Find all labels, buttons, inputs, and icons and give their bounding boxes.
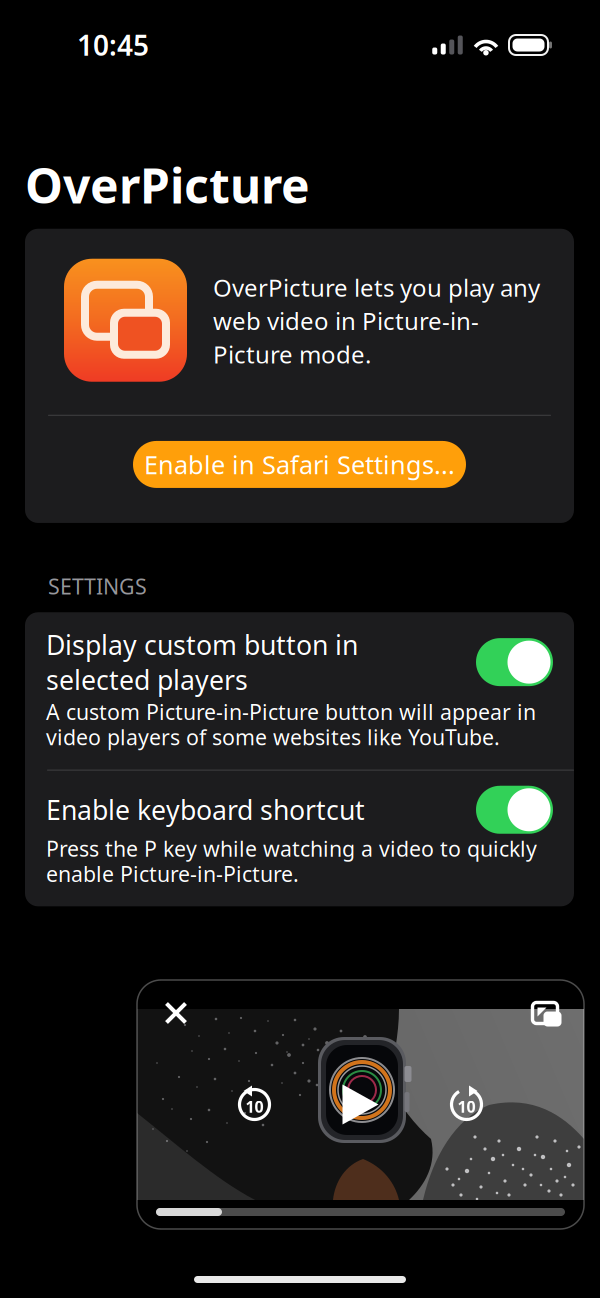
staticText: OverPicture	[25, 153, 310, 217]
button[interactable]: Skip forward 10 seconds	[444, 1082, 488, 1126]
button[interactable]: Skip back 10 seconds	[232, 1082, 276, 1126]
staticText: Enable in Safari Settings...	[144, 448, 455, 481]
staticText: 10	[457, 1096, 475, 1117]
staticText: OverPicture lets you play any web video …	[213, 271, 540, 371]
staticText: 10:45	[77, 26, 149, 64]
button[interactable]: Close	[158, 996, 194, 1030]
button[interactable]: Enable keyboard shortcut	[25, 771, 574, 906]
staticText: Press the P key while watching a video t…	[46, 836, 537, 886]
staticText: SETTINGS	[48, 572, 147, 600]
button[interactable]: Picture in Picture	[528, 996, 562, 1030]
staticText: 10	[245, 1096, 263, 1117]
staticText: Enable keyboard shortcut	[46, 792, 365, 827]
button[interactable]: Display custom button in selected player…	[25, 612, 574, 770]
staticText: A custom Picture-in-Picture button will …	[46, 699, 536, 750]
button[interactable]: Enable in Safari Settings...	[133, 441, 466, 488]
staticText: Display custom button in selected player…	[46, 627, 358, 697]
button[interactable]: Play	[338, 1082, 382, 1126]
